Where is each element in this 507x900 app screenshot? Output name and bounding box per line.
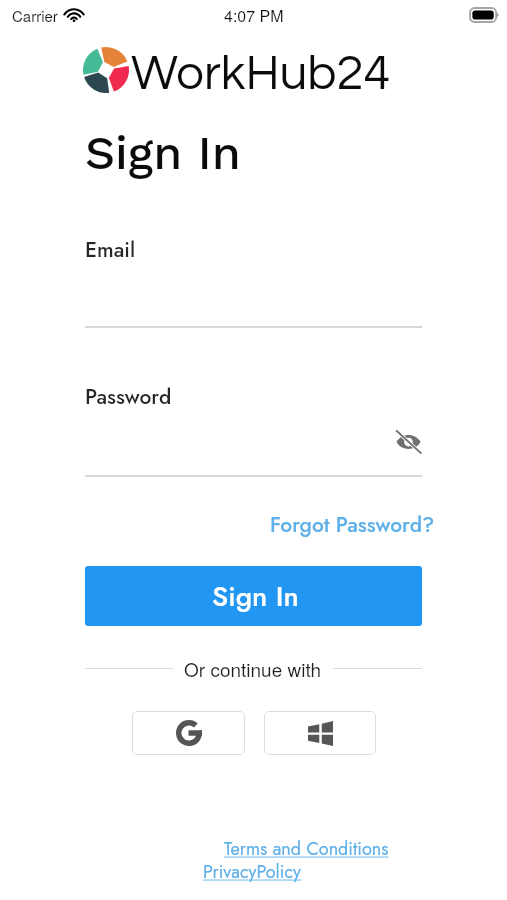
staticText: Or continue with — [184, 655, 322, 682]
staticText: Carrier — [12, 5, 58, 26]
button[interactable]: Sign In — [85, 566, 422, 626]
button[interactable]: PrivacyPolicy — [203, 859, 301, 885]
staticText: 4:07 PM — [224, 4, 284, 27]
staticText: Email — [85, 235, 136, 265]
button[interactable]: Terms and Conditions — [224, 836, 394, 862]
button[interactable]: Show password — [388, 422, 428, 462]
button[interactable]: Sign in with Microsoft — [264, 711, 376, 755]
staticText: Sign In — [85, 125, 241, 180]
staticText: Sign In — [212, 576, 299, 616]
button[interactable]: Sign in with Google — [132, 711, 245, 755]
staticText: WorkHub24 — [131, 49, 391, 99]
button[interactable]: Forgot Password? — [270, 510, 435, 540]
staticText: Password — [85, 382, 172, 412]
